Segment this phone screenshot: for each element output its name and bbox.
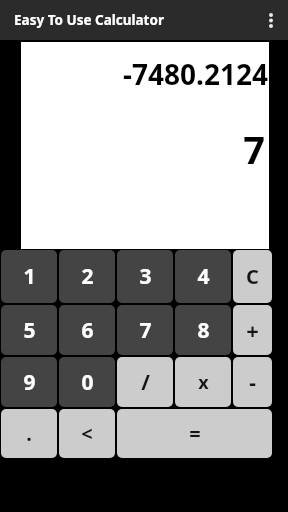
staticText: 0 bbox=[81, 368, 94, 397]
button[interactable]: x bbox=[175, 357, 231, 407]
button[interactable]: 7 bbox=[117, 305, 173, 355]
button[interactable]: < bbox=[59, 409, 115, 458]
staticText: = bbox=[189, 420, 201, 447]
staticText: - bbox=[249, 368, 256, 397]
staticText: < bbox=[81, 420, 93, 447]
staticText: 8 bbox=[197, 316, 210, 345]
staticText: 7 bbox=[139, 316, 152, 345]
staticText: -7480.2124 bbox=[21, 55, 268, 93]
button[interactable]: 5 bbox=[1, 305, 57, 355]
staticText: 6 bbox=[81, 316, 94, 345]
button[interactable]: 3 bbox=[117, 250, 173, 303]
button[interactable]: . bbox=[1, 409, 57, 458]
staticText: / bbox=[141, 368, 150, 397]
staticText: 9 bbox=[23, 368, 36, 397]
staticText: 2 bbox=[81, 262, 94, 291]
staticText: . bbox=[26, 420, 32, 447]
staticText: 3 bbox=[139, 262, 152, 291]
staticText: C bbox=[246, 263, 259, 290]
button[interactable]: 2 bbox=[59, 250, 115, 303]
staticText: 7 bbox=[21, 123, 265, 175]
button[interactable]: 0 bbox=[59, 357, 115, 407]
button[interactable]: / bbox=[117, 357, 173, 407]
staticText: 1 bbox=[23, 262, 36, 291]
staticText: x bbox=[198, 370, 209, 395]
button[interactable]: C bbox=[233, 250, 272, 303]
button[interactable]: - bbox=[233, 357, 272, 407]
button[interactable]: More options bbox=[254, 0, 288, 40]
staticText: Easy To Use Calculator bbox=[14, 11, 164, 29]
staticText: 5 bbox=[23, 316, 36, 345]
button[interactable]: + bbox=[233, 305, 272, 355]
button[interactable]: 4 bbox=[175, 250, 231, 303]
staticText: + bbox=[246, 315, 259, 345]
button[interactable]: 9 bbox=[1, 357, 57, 407]
button[interactable]: 8 bbox=[175, 305, 231, 355]
button[interactable]: = bbox=[117, 409, 272, 458]
button[interactable]: 1 bbox=[1, 250, 57, 303]
staticText: 4 bbox=[197, 262, 210, 291]
button[interactable]: 6 bbox=[59, 305, 115, 355]
